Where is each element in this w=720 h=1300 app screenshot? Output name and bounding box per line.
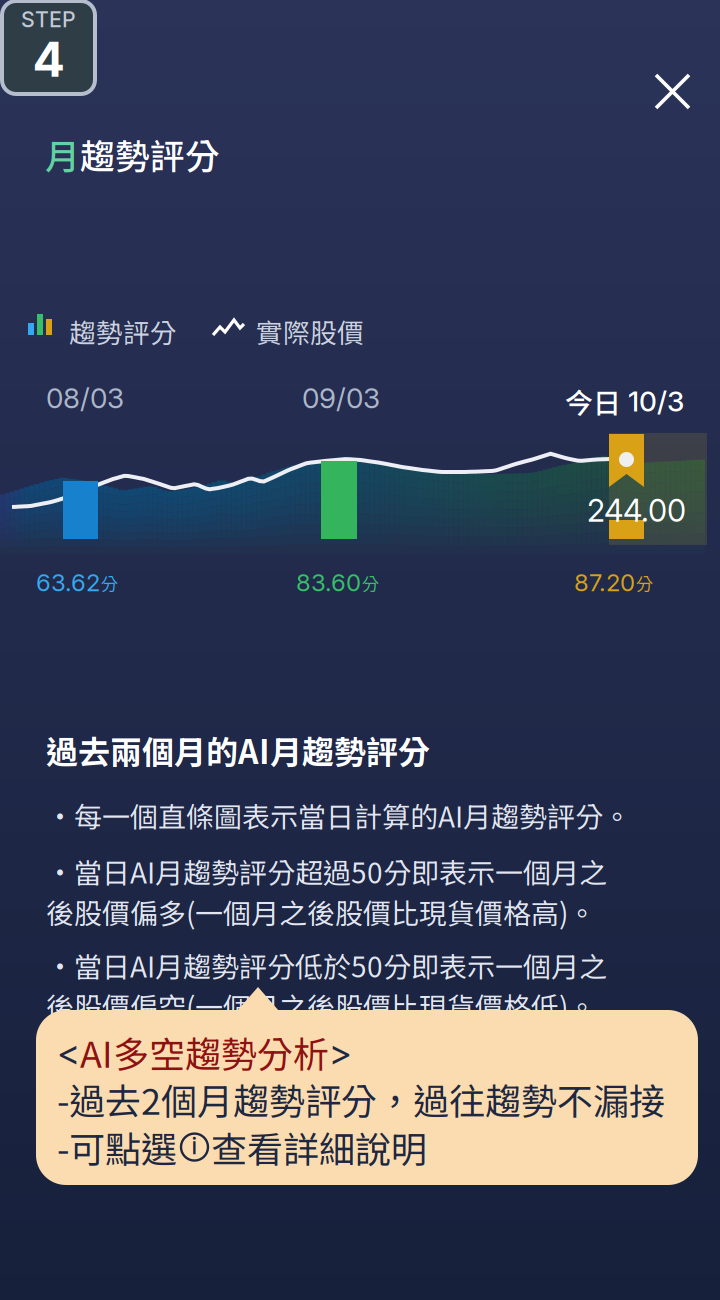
staticText: STEP bbox=[21, 7, 76, 32]
staticText: 過去兩個月的AI月趨勢評分 bbox=[46, 727, 430, 773]
staticText: 63.62 bbox=[36, 568, 100, 597]
staticText: ・每一個直條圖表示當日計算的AI月趨勢評分。 bbox=[46, 795, 631, 835]
staticText: 今日 bbox=[565, 381, 621, 421]
staticText: > bbox=[329, 1030, 352, 1074]
staticText: 4 bbox=[32, 30, 64, 88]
button[interactable]: < bbox=[36, 987, 698, 1187]
staticText: 查看詳細說明 bbox=[211, 1121, 427, 1173]
staticText: 09/03 bbox=[302, 381, 380, 415]
staticText: 87.20 bbox=[574, 568, 635, 597]
staticText: i bbox=[191, 1132, 197, 1160]
staticText: < bbox=[57, 1030, 80, 1074]
staticText: 244.00 bbox=[587, 492, 686, 529]
staticText: 分 bbox=[636, 571, 653, 596]
staticText: 趨勢評分 bbox=[69, 312, 177, 351]
staticText: -可點選 bbox=[57, 1121, 177, 1173]
staticText: 月 bbox=[45, 129, 80, 179]
staticText: 10/3 bbox=[628, 384, 684, 418]
staticText: 08/03 bbox=[46, 381, 124, 415]
staticText: 分 bbox=[101, 571, 118, 596]
staticText: 83.60 bbox=[296, 568, 361, 597]
staticText: AI多空趨勢分析 bbox=[80, 1026, 329, 1078]
staticText: 分 bbox=[362, 571, 379, 596]
staticText: ・當日AI月趨勢評分低於50分即表示一個月之後股價偏空(一個月之後股價比現貨價格… bbox=[46, 945, 607, 1026]
staticText: 趨勢評分 bbox=[80, 129, 220, 179]
staticText: 實際股價 bbox=[256, 312, 364, 351]
button[interactable]: Close bbox=[638, 57, 707, 126]
staticText: ・當日AI月趨勢評分超過50分即表示一個月之後股價偏多(一個月之後股價比現貨價格… bbox=[46, 851, 607, 932]
staticText: -過去2個月趨勢評分，過往趨勢不漏接 bbox=[57, 1073, 665, 1125]
